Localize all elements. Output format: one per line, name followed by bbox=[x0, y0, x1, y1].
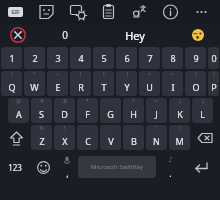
button[interactable]: > bbox=[162, 71, 183, 96]
button[interactable]: ' bbox=[77, 125, 98, 150]
button[interactable]: Voice input bbox=[56, 153, 78, 181]
button[interactable]: 5 bbox=[93, 47, 114, 69]
button[interactable]: Emoji bbox=[30, 153, 56, 181]
staticText: Hey bbox=[125, 28, 145, 43]
staticText: . bbox=[169, 167, 172, 179]
button[interactable]: ( bbox=[185, 71, 206, 96]
button[interactable]: | bbox=[70, 71, 91, 96]
button[interactable]: " bbox=[24, 71, 45, 96]
staticText: [ bbox=[103, 71, 105, 78]
staticText: > bbox=[171, 71, 174, 78]
staticText: 1 bbox=[9, 52, 15, 64]
button[interactable]: * bbox=[77, 98, 98, 123]
staticText: " bbox=[33, 71, 36, 78]
button[interactable]: # bbox=[31, 98, 52, 123]
button[interactable]: 0 bbox=[208, 47, 219, 69]
button[interactable]: Microsoft SwiftKey bbox=[78, 156, 156, 178]
staticText: O bbox=[192, 81, 200, 93]
button[interactable]: / bbox=[169, 125, 190, 150]
button[interactable]: Clipboard bbox=[93, 0, 124, 24]
staticText: GIF bbox=[11, 9, 20, 16]
staticText: C bbox=[85, 135, 91, 147]
button[interactable]: ! bbox=[146, 125, 167, 150]
staticText: A bbox=[16, 108, 22, 120]
button[interactable]: Emoji suggestion bbox=[176, 24, 220, 46]
staticText: ♪ bbox=[168, 156, 173, 164]
button[interactable]: 8 bbox=[162, 47, 183, 69]
button[interactable]: More options bbox=[186, 0, 217, 24]
button[interactable]: 3 bbox=[47, 47, 68, 69]
button[interactable]: - bbox=[100, 98, 121, 123]
staticText: J bbox=[155, 108, 158, 120]
staticText: B bbox=[131, 135, 137, 147]
staticText: H bbox=[130, 108, 137, 120]
staticText: & bbox=[63, 98, 67, 105]
button[interactable]: Enter bbox=[184, 153, 218, 181]
staticText: : bbox=[110, 125, 112, 132]
staticText: X bbox=[62, 135, 68, 147]
staticText: ₹ bbox=[63, 125, 66, 132]
staticText: , bbox=[66, 167, 69, 179]
staticText: 0 bbox=[211, 52, 217, 64]
staticText: N bbox=[153, 135, 160, 147]
button[interactable]: + bbox=[123, 98, 144, 123]
staticText: W bbox=[30, 81, 39, 93]
button[interactable]: 123 bbox=[0, 153, 30, 181]
staticText: 123 bbox=[8, 162, 22, 173]
button[interactable]: [ bbox=[93, 71, 114, 96]
staticText: U bbox=[146, 81, 153, 93]
button[interactable]: Dismiss bbox=[0, 24, 36, 46]
staticText: @ bbox=[16, 98, 21, 105]
button[interactable]: 1 bbox=[1, 47, 22, 69]
button[interactable]: < bbox=[139, 71, 160, 96]
button[interactable]: ₹ bbox=[54, 125, 75, 150]
button[interactable]: 0 bbox=[36, 24, 94, 46]
button[interactable]: ) bbox=[208, 71, 219, 96]
button[interactable]: ♪ bbox=[156, 153, 184, 181]
staticText: ; bbox=[133, 125, 135, 132]
staticText: ( bbox=[195, 71, 197, 78]
button[interactable]: Hey bbox=[94, 24, 176, 46]
button[interactable]: 7 bbox=[139, 47, 160, 69]
staticText: 4 bbox=[78, 52, 84, 64]
staticText: V bbox=[108, 135, 114, 147]
button[interactable]: 6 bbox=[116, 47, 137, 69]
staticText: # bbox=[40, 98, 44, 105]
staticText: ~ bbox=[56, 71, 59, 78]
button[interactable]: = bbox=[146, 98, 167, 123]
staticText: Q bbox=[8, 81, 16, 93]
button[interactable]: 9 bbox=[185, 47, 206, 69]
button[interactable]: GIF bbox=[0, 0, 31, 24]
staticText: 2 bbox=[32, 52, 38, 64]
button[interactable]: ~ bbox=[47, 71, 68, 96]
button[interactable]: ] bbox=[116, 71, 137, 96]
staticText: M bbox=[175, 135, 184, 147]
staticText: K bbox=[177, 108, 183, 120]
button[interactable]: Info bbox=[155, 0, 186, 24]
staticText: ) bbox=[213, 71, 215, 78]
staticText: = bbox=[155, 98, 158, 105]
button[interactable]: @ bbox=[8, 98, 29, 123]
staticText: * bbox=[86, 98, 89, 105]
button[interactable]: : bbox=[100, 125, 121, 150]
staticText: / bbox=[179, 125, 181, 132]
button[interactable]: Stickers bbox=[31, 0, 62, 24]
staticText: ' bbox=[87, 125, 89, 132]
button[interactable]: 2 bbox=[24, 47, 45, 69]
button[interactable]: & bbox=[54, 98, 75, 123]
button[interactable]: % bbox=[31, 125, 52, 150]
button[interactable]: Backspace bbox=[191, 125, 218, 150]
button[interactable]: ( bbox=[169, 98, 190, 123]
button[interactable]: Shift bbox=[3, 125, 30, 150]
button[interactable]: ; bbox=[123, 125, 144, 150]
button[interactable]: Translator bbox=[124, 0, 155, 24]
staticText: 0 bbox=[62, 28, 68, 42]
staticText: Microsoft SwiftKey bbox=[91, 163, 143, 171]
staticText: 6 bbox=[124, 52, 130, 64]
staticText: G bbox=[107, 108, 114, 120]
button[interactable]: Themes bbox=[62, 0, 93, 24]
staticText: E bbox=[55, 81, 61, 93]
button[interactable]: ) bbox=[192, 98, 213, 123]
button[interactable]: \ bbox=[1, 71, 22, 96]
button[interactable]: 4 bbox=[70, 47, 91, 69]
